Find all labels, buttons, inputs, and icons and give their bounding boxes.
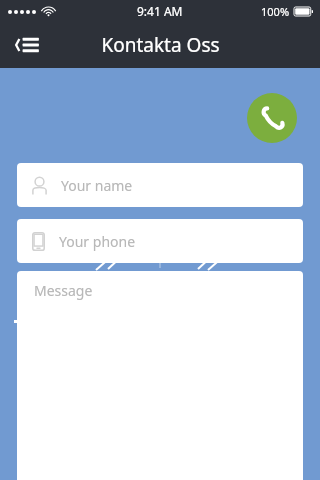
- button[interactable]: Message: [17, 271, 303, 480]
- button[interactable]: Menu: [0, 22, 56, 68]
- button[interactable]: Your name: [17, 163, 303, 207]
- staticText: Your phone: [59, 232, 136, 251]
- staticText: 100%: [261, 4, 290, 19]
- button[interactable]: Your phone: [17, 219, 303, 263]
- staticText: Your name: [61, 176, 133, 195]
- staticText: Message: [34, 281, 93, 300]
- button[interactable]: Call us: [247, 93, 297, 143]
- staticText: Kontakta Oss: [101, 32, 220, 58]
- staticText: 9:41 AM: [137, 3, 183, 19]
